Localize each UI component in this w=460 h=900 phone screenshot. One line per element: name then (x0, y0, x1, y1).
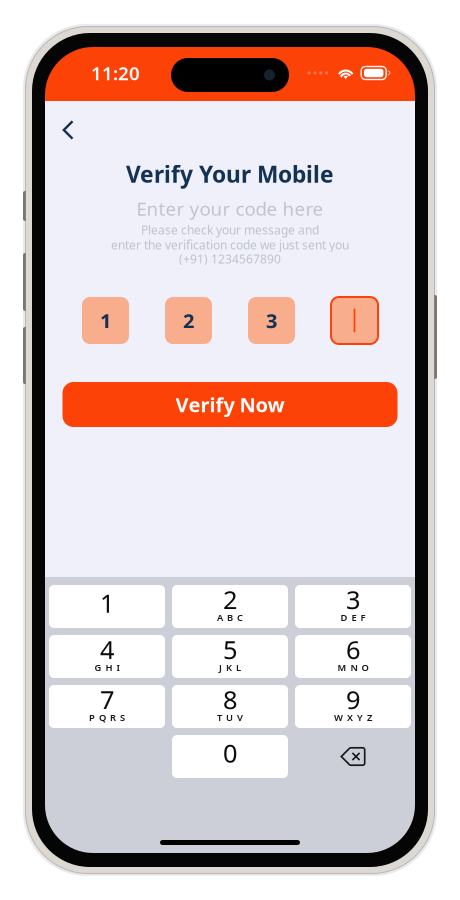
staticText: 4 (100, 632, 114, 666)
button[interactable]: 0 (172, 735, 288, 778)
button[interactable]: 9 (295, 685, 411, 728)
button[interactable]: Delete (295, 735, 411, 778)
staticText: 0 (223, 736, 237, 770)
staticText: 6 (346, 632, 360, 666)
staticText: D E F (340, 611, 365, 623)
button[interactable]: Verify Now (62, 382, 397, 427)
button[interactable]: 3 (295, 585, 411, 628)
button[interactable]: 7 (49, 685, 165, 728)
staticText: Verify Now (175, 391, 284, 418)
button[interactable]: Code digit 2 (165, 297, 212, 344)
staticText: 1 (100, 586, 114, 620)
staticText: Verify Your Mobile (126, 159, 334, 189)
button[interactable]: 4 (49, 635, 165, 678)
staticText: 5 (223, 632, 237, 666)
staticText: 1 (100, 307, 111, 334)
staticText: T U V (217, 711, 243, 723)
button[interactable]: Code digit 1 (82, 297, 129, 344)
staticText: W X Y Z (334, 711, 372, 723)
button[interactable]: Code digit 3 (248, 297, 295, 344)
staticText: 9 (346, 682, 360, 716)
staticText: 11:20 (91, 61, 140, 85)
button[interactable]: 1 (49, 585, 165, 628)
staticText: A B C (217, 611, 243, 623)
button[interactable]: Code digit, empty (331, 297, 378, 344)
staticText: J K L (219, 661, 241, 673)
staticText: G H I (94, 661, 119, 673)
staticText: M N O (337, 661, 368, 673)
staticText: 2 (223, 582, 237, 616)
button[interactable]: 8 (172, 685, 288, 728)
staticText: Please check your message and (141, 222, 319, 238)
staticText: 3 (266, 307, 277, 334)
staticText: Enter your code here (136, 196, 323, 221)
staticText: 2 (183, 307, 194, 334)
staticText: P Q R S (89, 711, 125, 723)
button[interactable]: 6 (295, 635, 411, 678)
staticText: (+91) 1234567890 (179, 251, 281, 267)
button[interactable]: Back (53, 111, 83, 149)
button[interactable]: 2 (172, 585, 288, 628)
staticText: enter the verification code we just sent… (111, 237, 349, 253)
staticText: 7 (100, 682, 114, 716)
button[interactable]: 5 (172, 635, 288, 678)
staticText: 8 (223, 682, 237, 716)
staticText: 3 (346, 582, 360, 616)
